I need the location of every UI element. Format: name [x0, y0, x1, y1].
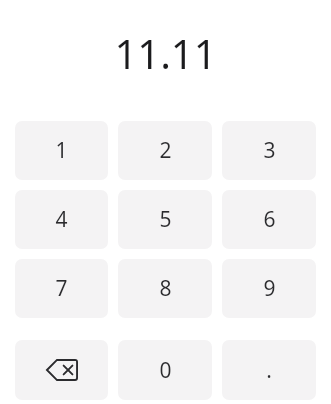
staticText: 3: [263, 136, 276, 165]
staticText: 8: [159, 274, 172, 303]
button[interactable]: 8: [118, 259, 212, 318]
button[interactable]: 9: [222, 259, 316, 318]
button[interactable]: 2: [118, 121, 212, 180]
staticText: .: [266, 356, 272, 385]
staticText: 1: [55, 136, 68, 165]
staticText: 2: [159, 136, 172, 165]
button[interactable]: 3: [222, 121, 316, 180]
button[interactable]: 6: [222, 190, 316, 249]
button[interactable]: 1: [15, 121, 108, 180]
button[interactable]: Backspace: [15, 340, 108, 400]
staticText: 4: [55, 205, 68, 234]
button[interactable]: 4: [15, 190, 108, 249]
staticText: 11.11: [114, 26, 217, 80]
staticText: 6: [263, 205, 276, 234]
button[interactable]: 0: [118, 340, 212, 400]
staticText: 9: [263, 274, 276, 303]
button[interactable]: 5: [118, 190, 212, 249]
staticText: 0: [159, 356, 172, 385]
button[interactable]: .: [222, 340, 316, 400]
staticText: 7: [55, 274, 68, 303]
button[interactable]: 7: [15, 259, 108, 318]
staticText: 5: [159, 205, 172, 234]
